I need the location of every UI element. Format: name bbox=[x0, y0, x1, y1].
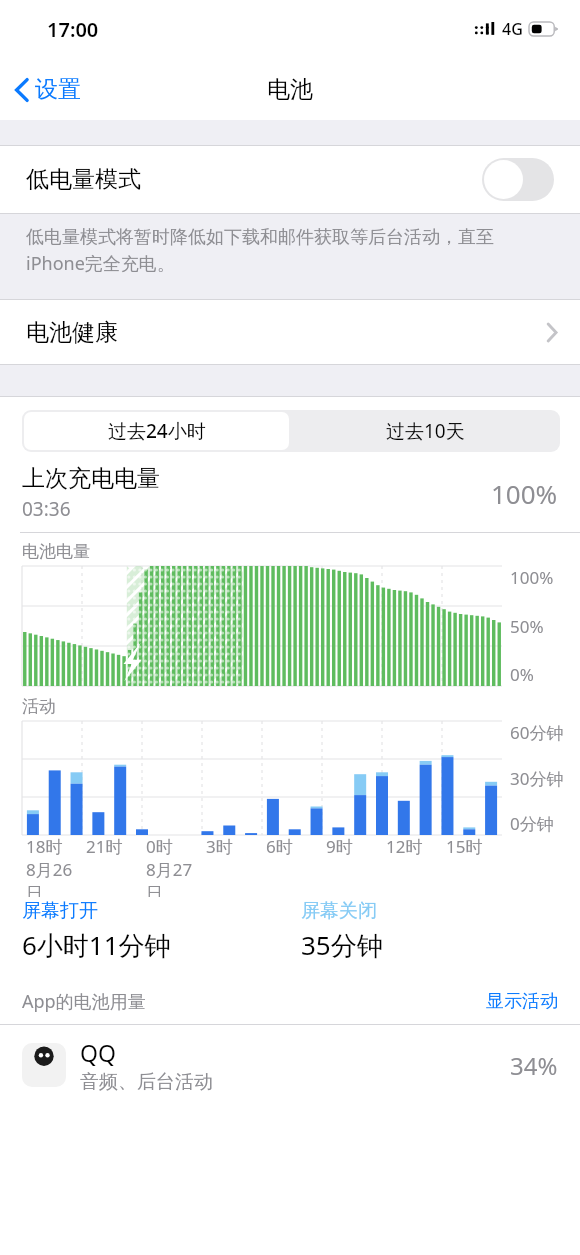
staticText: 60分钟 bbox=[510, 721, 564, 744]
staticText: 4G bbox=[502, 18, 523, 40]
staticText: 显示活动 bbox=[486, 990, 558, 1013]
button[interactable]: 显示活动 bbox=[486, 990, 558, 1013]
staticText: 100% bbox=[491, 476, 558, 511]
staticText: 0分钟 bbox=[510, 812, 554, 835]
staticText: 18时 bbox=[26, 835, 63, 858]
staticText: 6小时11分钟 bbox=[22, 927, 171, 963]
staticText: 9时 bbox=[326, 835, 353, 858]
button[interactable]: Low Power Mode toggle bbox=[482, 158, 554, 201]
staticText: 100% bbox=[510, 566, 554, 589]
staticText: 设置 bbox=[35, 75, 81, 104]
staticText: 电池电量 bbox=[22, 541, 90, 562]
staticText: 过去24小时 bbox=[108, 418, 206, 444]
staticText: 上次充电电量 bbox=[22, 464, 160, 493]
staticText: 15时 bbox=[446, 835, 483, 858]
button[interactable]: QQ bbox=[0, 1025, 580, 1105]
staticText: 活动 bbox=[22, 696, 56, 717]
staticText: 6时 bbox=[266, 835, 293, 858]
button[interactable]: 低电量模式 bbox=[0, 146, 580, 213]
staticText: 17:00 bbox=[47, 16, 99, 43]
staticText: 03:36 bbox=[22, 496, 71, 522]
staticText: 50% bbox=[510, 615, 544, 638]
staticText: 35分钟 bbox=[301, 927, 383, 963]
button[interactable]: 电池健康 bbox=[0, 300, 580, 364]
staticText: 0时 bbox=[146, 835, 173, 858]
staticText: 电池健康 bbox=[26, 318, 118, 347]
staticText: QQ bbox=[80, 1037, 116, 1068]
staticText: 低电量模式将暂时降低如下载和邮件获取等后台活动，直至 iPhone完全充电。 bbox=[26, 226, 494, 276]
staticText: 3时 bbox=[206, 835, 233, 858]
staticText: 屏幕打开 bbox=[22, 899, 98, 923]
staticText: 屏幕关闭 bbox=[301, 899, 377, 923]
staticText: 过去10天 bbox=[386, 418, 465, 444]
staticText: 0% bbox=[510, 663, 534, 686]
button[interactable]: 上次充电电量 bbox=[22, 464, 558, 522]
staticText: 8月27日 bbox=[146, 858, 202, 897]
staticText: 34% bbox=[510, 1049, 558, 1082]
staticText: 12时 bbox=[386, 835, 423, 858]
button[interactable]: 过去10天 bbox=[291, 410, 560, 452]
staticText: 音频、后台活动 bbox=[80, 1070, 213, 1094]
staticText: 低电量模式 bbox=[26, 165, 141, 194]
staticText: 30分钟 bbox=[510, 767, 564, 790]
staticText: 电池 bbox=[267, 75, 313, 104]
staticText: 8月26日 bbox=[26, 858, 82, 897]
button[interactable]: 设置 bbox=[0, 69, 93, 110]
staticText: 21时 bbox=[86, 835, 123, 858]
staticText: App的电池用量 bbox=[22, 989, 146, 1014]
button[interactable]: 过去24小时 bbox=[24, 412, 289, 450]
